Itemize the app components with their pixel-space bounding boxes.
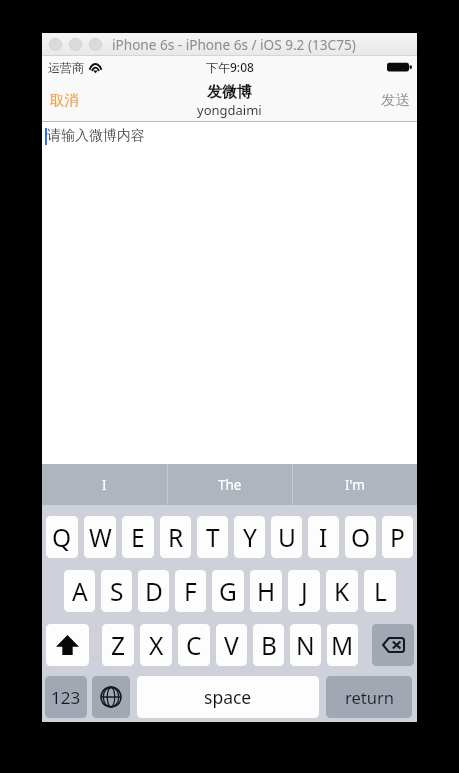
staticText: 123 [51,686,81,709]
staticText: M [331,629,354,662]
staticText: T [206,521,220,554]
button[interactable]: I'm [293,464,417,505]
button[interactable]: Z [102,624,134,666]
staticText: C [186,629,202,662]
staticText: H [257,575,276,608]
button[interactable]: 123 [45,676,87,718]
button[interactable]: Y [234,516,265,558]
button[interactable]: T [197,516,228,558]
button[interactable]: R [160,516,191,558]
button[interactable]: C [178,624,210,666]
staticText: R [168,521,184,554]
staticText: N [296,629,315,662]
staticText: Y [243,521,257,554]
button[interactable]: M [327,624,358,666]
staticText: F [184,575,197,608]
button[interactable]: I [42,464,167,505]
staticText: yongdaimi [197,101,262,119]
button[interactable]: K [326,570,358,612]
staticText: I'm [345,476,365,494]
button[interactable]: 发送 [367,86,417,117]
staticText: I [102,476,107,494]
staticText: space [204,685,252,709]
button[interactable]: E [122,516,154,558]
button[interactable]: 取消 [42,86,93,117]
button[interactable]: N [290,624,321,666]
staticText: W [89,521,112,554]
button[interactable]: return [326,676,412,718]
button[interactable]: L [364,570,396,612]
staticText: O [351,521,371,554]
staticText: E [131,521,145,554]
staticText: return [345,686,394,708]
staticText: S [110,575,124,608]
staticText: J [301,575,308,608]
staticText: D [145,575,163,608]
staticText: 发微博 [207,83,252,102]
staticText: U [278,521,296,554]
staticText: The [218,476,242,494]
staticText: 运营商 [48,60,84,75]
button[interactable]: A [64,570,95,612]
staticText: K [334,575,350,608]
button[interactable]: Shift [46,624,89,666]
button[interactable]: Backspace [372,624,414,666]
staticText: X [149,629,164,662]
button[interactable]: U [271,516,302,558]
staticText: G [219,575,237,608]
staticText: 取消 [50,91,79,109]
staticText: Z [111,629,126,662]
button[interactable]: Change keyboard [92,676,130,718]
button[interactable]: X [140,624,172,666]
button[interactable]: V [216,624,247,666]
staticText: V [224,629,239,662]
button[interactable]: I [308,516,339,558]
staticText: B [261,629,277,662]
button[interactable]: J [288,570,320,612]
button[interactable]: G [212,570,244,612]
staticText: 下午9:08 [206,59,254,75]
button[interactable]: The [168,464,292,505]
staticText: 发送 [381,91,410,109]
button[interactable]: O [345,516,376,558]
staticText: iPhone 6s - iPhone 6s / iOS 9.2 (13C75) [112,35,356,54]
staticText: L [374,575,387,608]
staticText: 请输入微博内容 [47,127,145,145]
button[interactable]: W [84,516,116,558]
staticText: A [72,575,88,608]
button[interactable]: H [250,570,282,612]
button[interactable]: S [101,570,132,612]
button[interactable]: P [382,516,413,558]
button[interactable]: Q [46,516,78,558]
staticText: Q [52,521,72,554]
staticText: I [319,521,328,554]
button[interactable]: F [175,570,206,612]
button[interactable]: B [253,624,284,666]
button[interactable]: space [137,676,319,718]
button[interactable]: D [138,570,169,612]
staticText: P [390,521,405,554]
